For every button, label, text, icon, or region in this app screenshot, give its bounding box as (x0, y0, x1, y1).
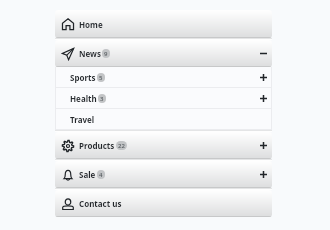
staticText: Sports (70, 72, 96, 83)
button[interactable]: Health (55, 88, 272, 109)
staticText: Products (79, 140, 115, 151)
button[interactable]: Contact us (55, 190, 272, 217)
button[interactable]: Sale (55, 161, 272, 188)
staticText: 3 (100, 95, 104, 103)
staticText: Travel (70, 114, 95, 125)
button[interactable]: Travel (55, 109, 272, 130)
staticText: Sale (79, 169, 96, 180)
button[interactable]: Sports (55, 67, 272, 88)
staticText: 4 (99, 171, 103, 179)
staticText: 5 (99, 74, 103, 82)
staticText: 9 (104, 50, 108, 58)
staticText: Contact us (79, 198, 122, 209)
staticText: 22 (118, 142, 125, 150)
staticText: Home (79, 19, 103, 30)
button[interactable]: Products (55, 132, 272, 159)
staticText: Health (70, 93, 97, 104)
staticText: News (79, 48, 101, 59)
button[interactable]: News (55, 40, 272, 67)
button[interactable]: Home (55, 10, 272, 38)
